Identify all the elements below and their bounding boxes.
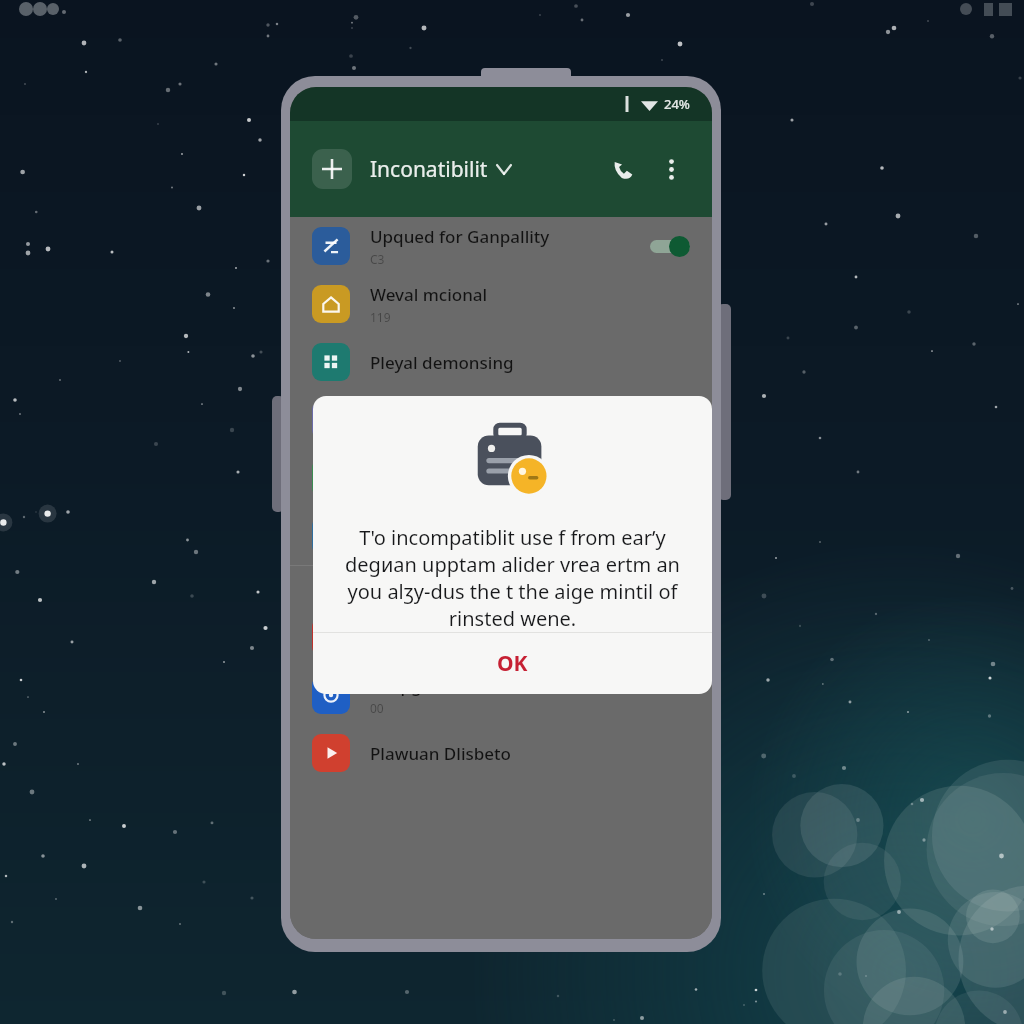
- button[interactable]: Add: [312, 149, 352, 189]
- button[interactable]: Ehopgee Slesten: [290, 666, 712, 724]
- button[interactable]: Mesong hosing: [290, 449, 712, 507]
- staticText: OK: [497, 649, 528, 678]
- staticText: 24%: [664, 95, 690, 113]
- staticText: Plawuan Dlisbeto: [370, 742, 511, 765]
- button[interactable]: OK: [313, 633, 712, 694]
- staticText: Weval mcional: [370, 283, 488, 306]
- button[interactable]: Call: [604, 150, 642, 188]
- staticText: Mesong hosing: [370, 467, 495, 490]
- staticText: Inconatibilit: [370, 155, 488, 184]
- button[interactable]: Plawuan Dlisbeto: [290, 724, 712, 782]
- staticText: Ehopgee Slesten: [370, 674, 505, 697]
- staticText: Pleyal demonsing: [370, 351, 514, 374]
- staticText: C3: [370, 251, 385, 267]
- staticText: Closende: [471, 578, 532, 597]
- button[interactable]: Trovaces Usune Weolnin: [290, 608, 712, 666]
- staticText: T'o incompatiblit use f from earʹy degиa…: [331, 524, 694, 632]
- button[interactable]: Toggle: [650, 235, 690, 257]
- button[interactable]: Oppel slisinte: [290, 507, 712, 565]
- button[interactable]: Weval mcional: [290, 275, 712, 333]
- button[interactable]: Inconatibilit: [370, 155, 511, 184]
- button[interactable]: Pleyal demonsing: [290, 333, 712, 391]
- staticText: Oppel slisinte: [370, 525, 481, 548]
- staticText: Trovaces Usune Weolnin: [370, 616, 568, 639]
- staticText: 00: [370, 700, 384, 716]
- button[interactable]: Upqued for Ganpallity: [290, 217, 712, 275]
- button[interactable]: Wepled slenting: [290, 391, 712, 449]
- staticText: 119: [370, 309, 391, 325]
- staticText: Wepled slenting: [370, 409, 501, 432]
- button[interactable]: More options: [652, 150, 690, 188]
- staticText: Upqued for Ganpallity: [370, 225, 550, 248]
- button[interactable]: Toggle: [650, 525, 690, 547]
